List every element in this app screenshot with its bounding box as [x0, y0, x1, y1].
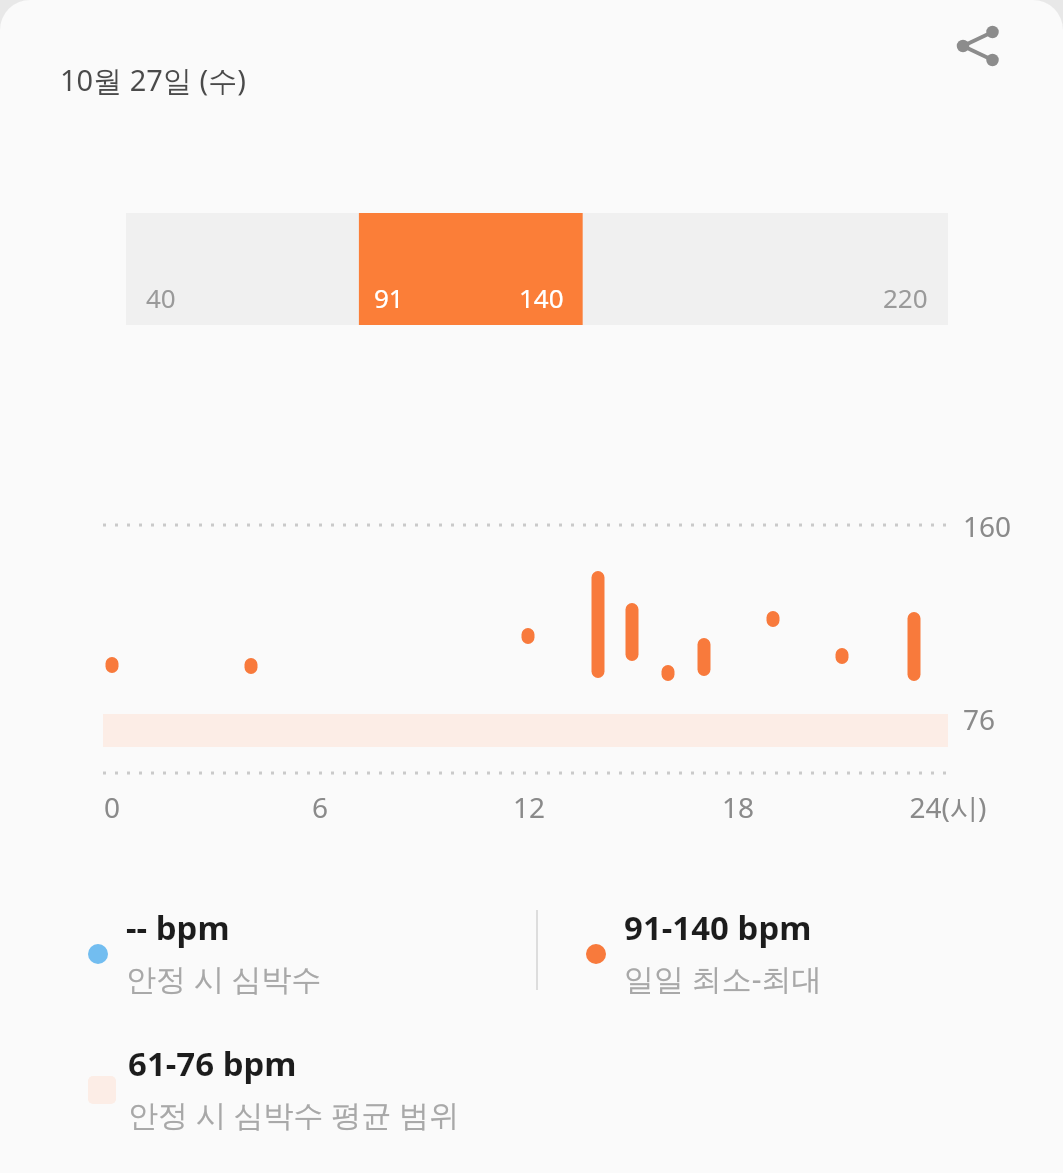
staticText: 140 [519, 280, 564, 315]
staticText: 안정 시 심박수 [126, 958, 322, 999]
staticText: 91-140 bpm [624, 905, 812, 950]
staticText: -- bpm [126, 905, 230, 950]
staticText: 76 [963, 700, 996, 738]
button[interactable]: 91-140 bpm [586, 905, 822, 999]
button[interactable]: 61-76 bpm [88, 1041, 460, 1135]
button[interactable]: -- bpm [88, 905, 322, 999]
button[interactable]: 40 [126, 213, 948, 325]
staticText: 12 [459, 788, 599, 826]
staticText: 0 [42, 788, 182, 826]
staticText: 160 [963, 507, 1012, 545]
staticText: 91 [374, 280, 404, 315]
button[interactable]: Share [943, 11, 1013, 81]
staticText: 6 [250, 788, 390, 826]
staticText: 18 [668, 788, 808, 826]
staticText: 10월 27일 (수) [60, 60, 246, 100]
staticText: 일일 최소-최대 [624, 958, 822, 999]
staticText: 40 [146, 280, 176, 315]
staticText: 220 [883, 280, 928, 315]
staticText: 24(시) [878, 788, 1018, 826]
staticText: 61-76 bpm [128, 1041, 297, 1086]
staticText: 안정 시 심박수 평균 범위 [128, 1094, 460, 1135]
